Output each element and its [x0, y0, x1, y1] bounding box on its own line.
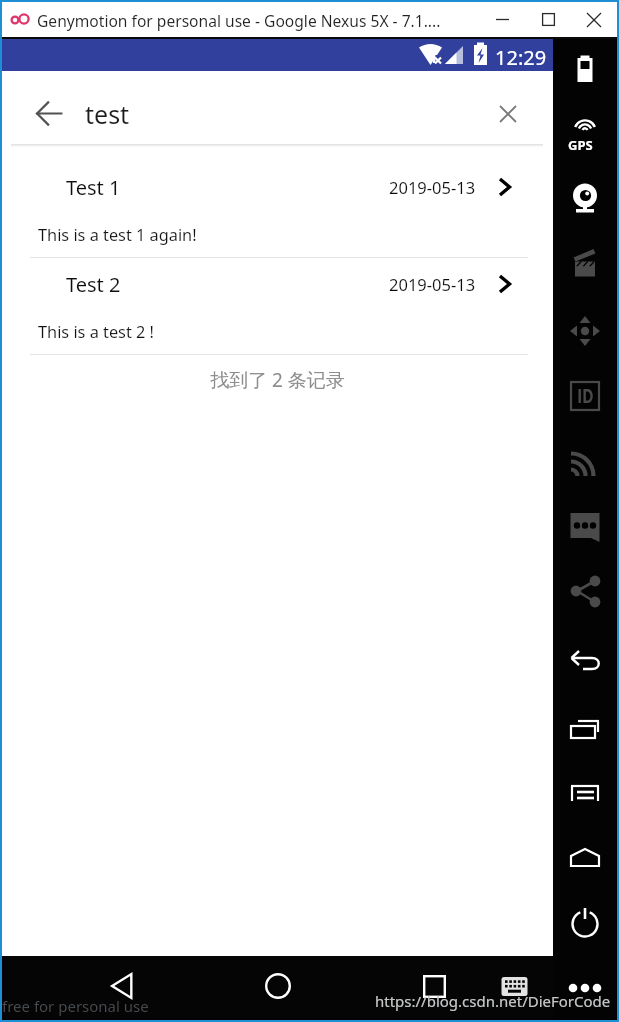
button[interactable]: Battery [555, 39, 615, 99]
other: Close [587, 13, 601, 27]
button[interactable]: Test 1 [2, 161, 553, 258]
button[interactable]: Camera [555, 168, 615, 228]
button[interactable]: Recents [410, 962, 458, 1010]
other: Maximize [542, 13, 555, 26]
button[interactable]: Test 2 [2, 258, 553, 355]
staticText: 12:29 [495, 44, 547, 71]
button[interactable]: More options [561, 964, 609, 1012]
staticText: GPS [568, 136, 593, 154]
staticText: 2019-05-13 [389, 273, 476, 295]
button[interactable]: Keyboard [490, 962, 538, 1010]
staticText: Test 1 [66, 174, 121, 201]
staticText: https://blog.csdn.net/DieForCode [375, 991, 611, 1011]
staticText: test [85, 97, 130, 131]
other: Keyboard [501, 973, 528, 1000]
staticText: 2019-05-13 [389, 176, 476, 198]
staticText: This is a test 1 again! [38, 224, 197, 246]
button[interactable]: Share [555, 561, 615, 621]
other: Home [265, 973, 291, 999]
button[interactable]: Rotate [555, 301, 615, 361]
staticText: This is a test 2 ! [38, 321, 154, 343]
other: Back [36, 100, 63, 127]
other: Minimize [496, 13, 509, 26]
button[interactable]: Back [555, 633, 615, 693]
button[interactable]: Menu [555, 763, 615, 823]
button[interactable]: Identifiers [555, 366, 615, 426]
staticText: Genymotion for personal use - Google Nex… [37, 10, 441, 31]
button[interactable]: Network [555, 432, 615, 492]
staticText: free for personal use [2, 996, 149, 1016]
staticText: 找到了 2 条记录 [2, 367, 553, 393]
button[interactable]: Recents [555, 698, 615, 758]
button[interactable]: Home [555, 828, 615, 888]
button[interactable]: Back [26, 83, 72, 144]
button[interactable]: Back [99, 962, 147, 1010]
button[interactable]: Minimize [479, 2, 525, 37]
button[interactable]: Clear search [473, 83, 543, 144]
button[interactable]: SMS [555, 496, 615, 556]
button[interactable]: Home [254, 962, 302, 1010]
other: More options [569, 972, 601, 1004]
other: Clear search [500, 106, 516, 122]
other: Back [110, 973, 136, 999]
button[interactable]: Maximize [525, 2, 571, 37]
other: Recents [423, 975, 446, 998]
button[interactable]: Close [571, 2, 617, 37]
button[interactable]: Power [555, 893, 615, 953]
staticText: Test 2 [66, 271, 121, 298]
button[interactable]: Screen record [555, 235, 615, 295]
button[interactable]: GPS [555, 103, 615, 163]
